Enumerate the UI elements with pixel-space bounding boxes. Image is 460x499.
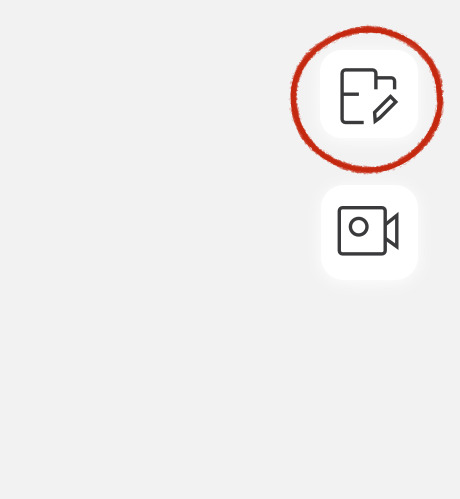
button[interactable]: New note <box>320 50 418 138</box>
button[interactable]: New video <box>321 185 418 280</box>
